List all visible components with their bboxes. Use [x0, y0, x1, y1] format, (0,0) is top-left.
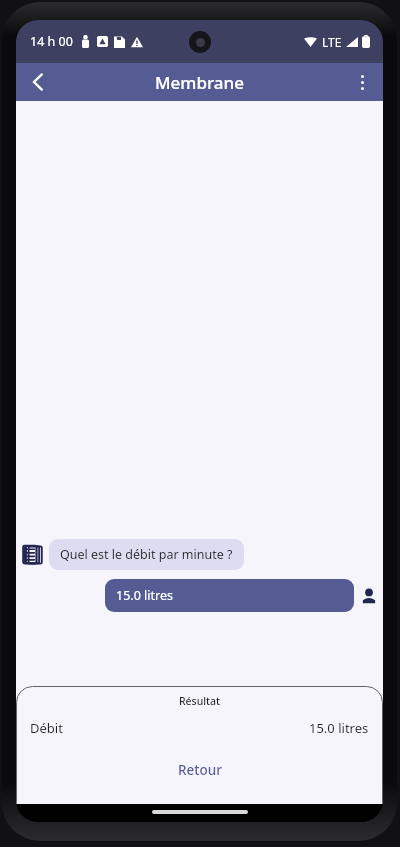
- staticText: 14 h 00: [30, 33, 73, 50]
- staticText: Résultat: [16, 694, 383, 708]
- staticText: 15.0 litres: [116, 587, 173, 604]
- button[interactable]: 15.0 litres: [105, 579, 354, 612]
- staticText: Débit: [30, 719, 63, 737]
- staticText: Quel est le débit par minute ?: [60, 546, 233, 563]
- staticText: Retour: [178, 761, 222, 779]
- button[interactable]: Retour: [16, 754, 383, 786]
- button[interactable]: Back: [16, 63, 60, 101]
- staticText: 15.0 litres: [309, 719, 369, 737]
- staticText: Membrane: [155, 71, 244, 94]
- staticText: LTE: [322, 34, 342, 50]
- button[interactable]: Quel est le débit par minute ?: [49, 539, 244, 570]
- button[interactable]: More options: [341, 63, 383, 101]
